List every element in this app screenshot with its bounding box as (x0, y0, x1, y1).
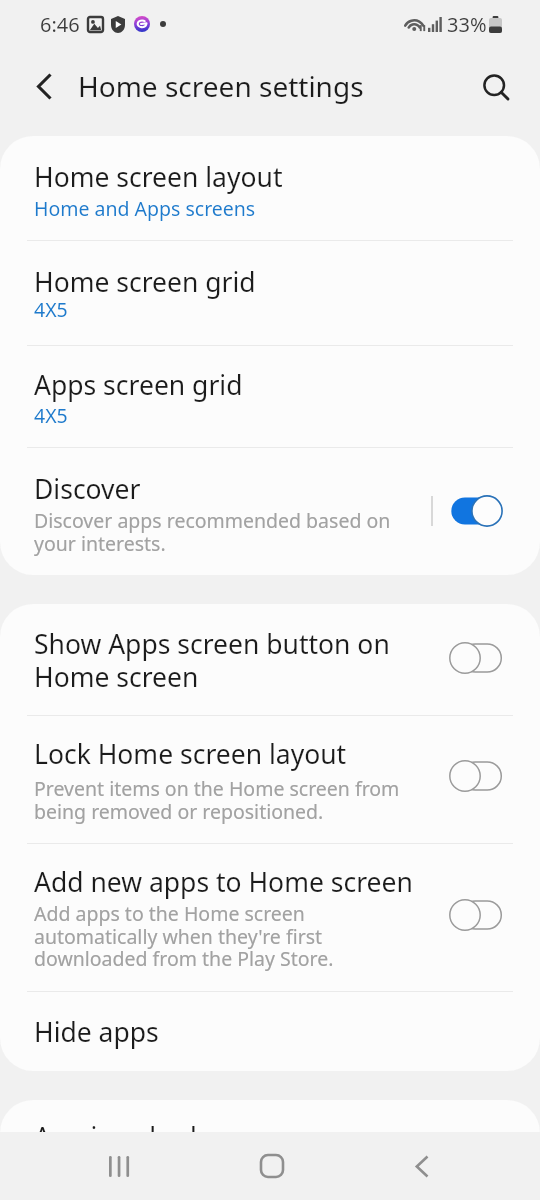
staticText: Discover apps recommended based on your … (34, 507, 391, 556)
button[interactable]: Home screen grid (0, 241, 540, 345)
staticText: 4X5 (34, 296, 68, 323)
button[interactable]: Toggle (450, 760, 502, 792)
button[interactable]: Toggle (450, 642, 502, 674)
staticText: 4X5 (34, 402, 68, 429)
staticText: Lock Home screen layout (34, 736, 347, 772)
staticText: Apps screen grid (34, 367, 243, 403)
button[interactable]: Search (475, 64, 519, 108)
button[interactable]: Hide apps (0, 992, 540, 1071)
staticText: Home screen grid (34, 264, 256, 300)
staticText: Discover (34, 471, 141, 507)
button[interactable]: App icon badges (0, 1100, 540, 1200)
staticText: Home screen layout (34, 159, 283, 195)
button[interactable]: Recent apps (78, 1144, 162, 1188)
button[interactable]: Lock Home screen layout (0, 716, 540, 843)
button[interactable]: Apps screen grid (0, 346, 540, 447)
staticText: Show Apps screen button on Home screen (34, 626, 390, 695)
staticText: App icon badges (34, 1119, 241, 1155)
staticText: Hide apps (34, 1014, 159, 1050)
button[interactable]: Add new apps to Home screen (0, 844, 540, 991)
button[interactable]: Discover (0, 448, 540, 575)
staticText: Add apps to the Home screen automaticall… (34, 900, 334, 971)
staticText: Home screen settings (78, 67, 364, 105)
staticText: Add new apps to Home screen (34, 864, 413, 900)
staticText: 6:46 (40, 11, 80, 38)
button[interactable]: Home (230, 1144, 314, 1188)
button[interactable]: Back (380, 1144, 464, 1188)
button[interactable]: Navigate up (22, 64, 66, 108)
button[interactable]: Toggle (450, 899, 502, 931)
button[interactable]: Discover toggle (450, 495, 502, 527)
staticText: Prevent items on the Home screen from be… (34, 775, 400, 824)
button[interactable]: Show Apps screen button on Home screen (0, 604, 540, 715)
staticText: 33% (447, 11, 487, 38)
staticText: Home and Apps screens (34, 195, 256, 222)
button[interactable]: Home screen layout (0, 136, 540, 240)
